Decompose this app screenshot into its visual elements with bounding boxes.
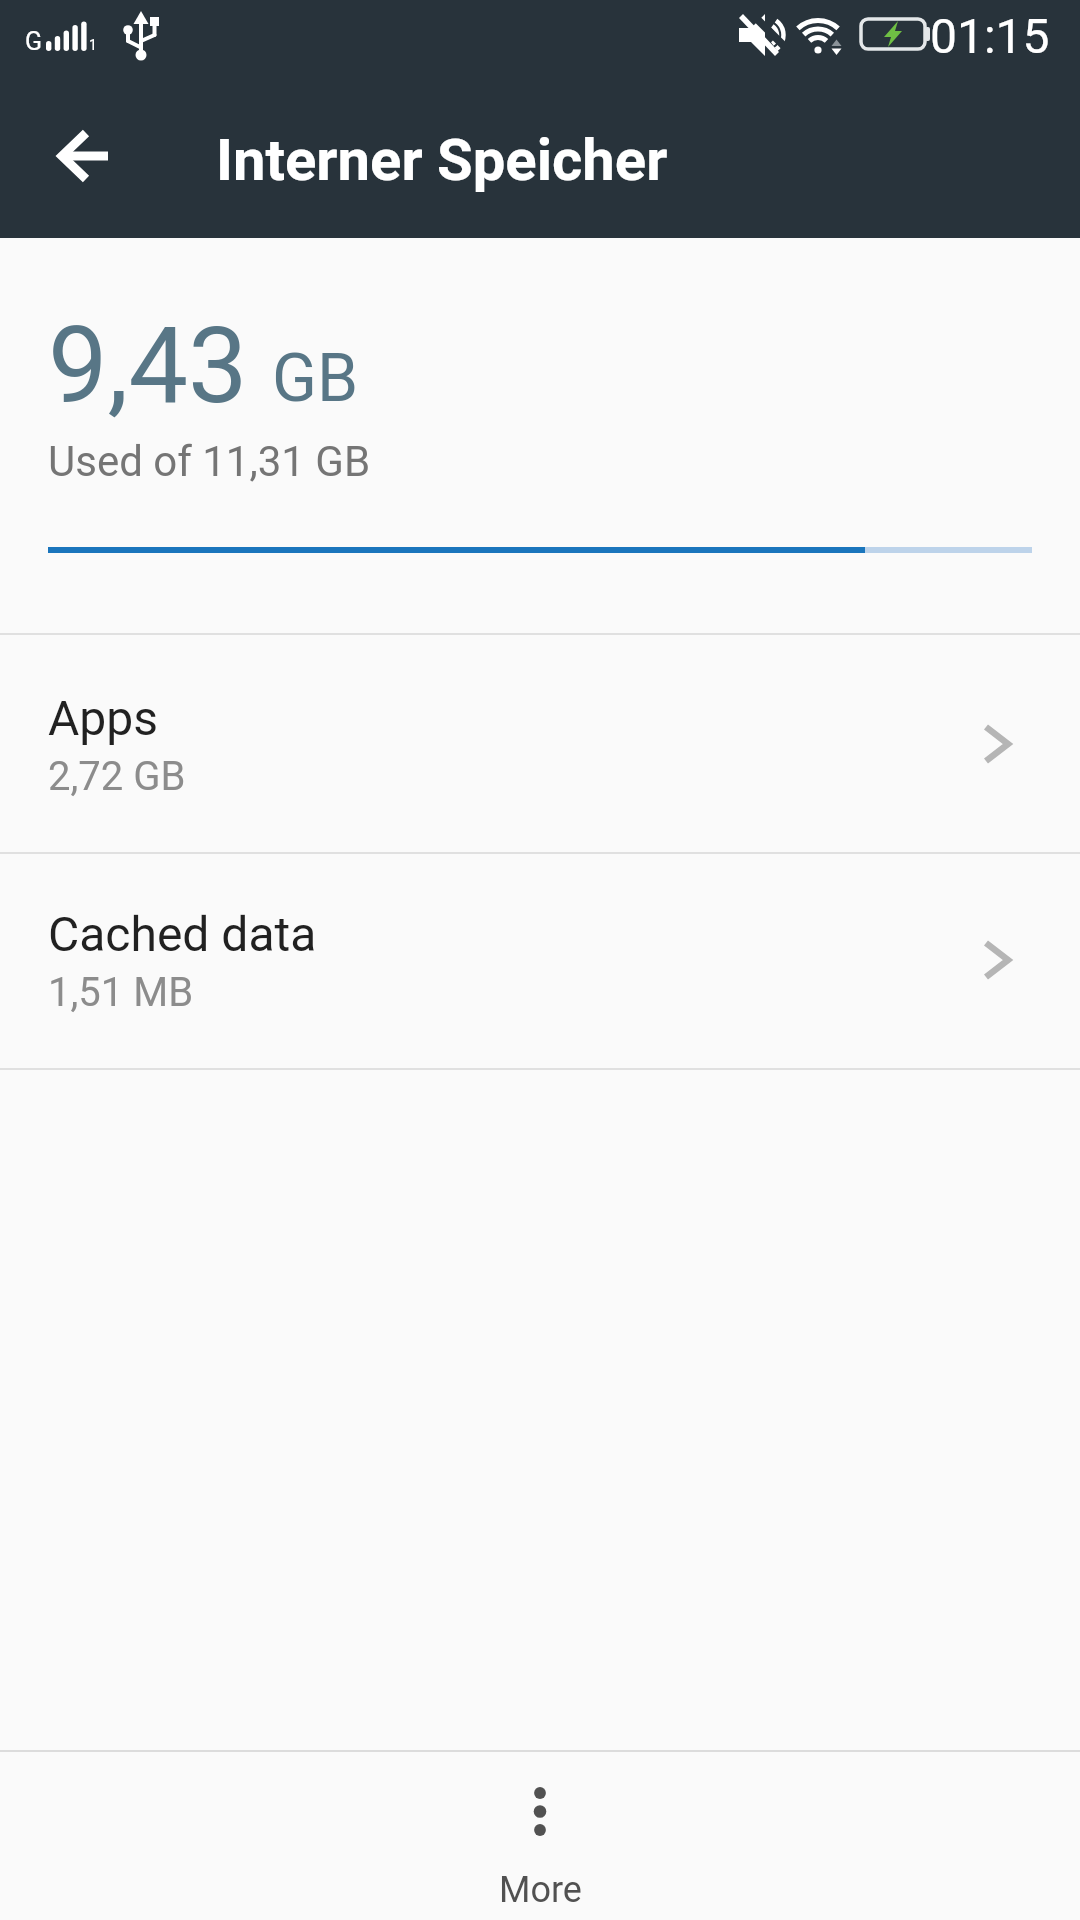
button[interactable]: Cached data	[0, 854, 1080, 1068]
staticText: Apps	[48, 690, 158, 746]
staticText: Cached data	[48, 906, 317, 962]
button[interactable]: Apps	[0, 638, 1080, 852]
button[interactable]	[480, 1762, 600, 1920]
staticText: Used of 11,31 GB	[48, 437, 371, 486]
staticText: 01:15	[930, 8, 1050, 64]
staticText: More	[499, 1869, 582, 1911]
staticText: G	[25, 27, 43, 56]
staticText: 1	[89, 37, 97, 53]
staticText: 1,51 MB	[48, 969, 194, 1016]
staticText: 2,72 GB	[48, 753, 186, 800]
button[interactable]	[36, 108, 132, 204]
staticText: Interner Speicher	[216, 126, 668, 194]
staticText: 9,43	[48, 304, 248, 428]
staticText: GB	[272, 340, 359, 417]
